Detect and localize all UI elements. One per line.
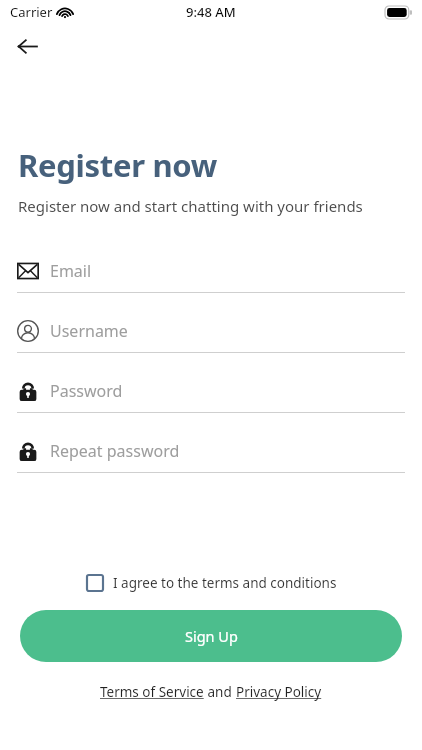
- button[interactable]: I agree to the terms and conditions: [86, 568, 337, 598]
- staticText: Terms of Service: [100, 683, 204, 701]
- button[interactable]: Sign Up: [20, 610, 402, 662]
- button[interactable]: Email: [0, 250, 422, 310]
- staticText: Register now: [18, 144, 217, 186]
- staticText: Password: [50, 380, 123, 402]
- button[interactable]: Privacy Policy: [236, 683, 322, 701]
- staticText: Carrier: [10, 3, 53, 21]
- staticText: 9:48 AM: [186, 3, 236, 21]
- staticText: I agree to the terms and conditions: [113, 574, 337, 592]
- button[interactable]: Back: [8, 27, 46, 65]
- button[interactable]: Password: [0, 370, 422, 430]
- staticText: Repeat password: [50, 440, 180, 462]
- button[interactable]: Repeat password: [0, 430, 422, 490]
- staticText: Email: [50, 260, 92, 282]
- staticText: Username: [50, 320, 128, 342]
- button[interactable]: Terms of Service: [100, 683, 204, 701]
- staticText: and: [204, 683, 236, 701]
- staticText: Sign Up: [185, 626, 238, 646]
- button[interactable]: Username: [0, 310, 422, 370]
- staticText: Privacy Policy: [236, 683, 322, 701]
- staticText: Register now and start chatting with you…: [18, 196, 363, 216]
